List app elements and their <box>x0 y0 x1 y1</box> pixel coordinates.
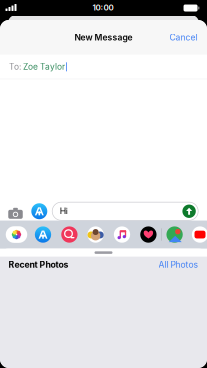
staticText: Hi <box>60 206 68 216</box>
button[interactable]: Music <box>109 220 135 249</box>
button[interactable]: Camera <box>3 202 27 220</box>
button[interactable]: Images <box>56 220 83 249</box>
button[interactable]: App Store <box>30 220 56 249</box>
staticText: To: <box>9 62 21 72</box>
staticText: 10:00 <box>92 3 113 12</box>
staticText: All Photos <box>158 259 198 270</box>
button[interactable]: YouTube <box>187 220 207 249</box>
button[interactable]: Memoji <box>82 220 109 249</box>
staticText: Zoe Taylor <box>21 62 65 72</box>
button[interactable]: Cancel <box>169 26 207 48</box>
button[interactable]: Maps <box>161 220 188 249</box>
button[interactable]: Photos <box>3 220 30 249</box>
staticText: New Message <box>74 32 132 42</box>
staticText: Cancel <box>169 32 197 42</box>
button[interactable]: Digital Touch <box>135 220 162 249</box>
button[interactable]: App Store <box>28 202 50 220</box>
staticText: Recent Photos <box>8 259 68 270</box>
button[interactable]: All Photos <box>158 256 198 273</box>
button[interactable]: Send <box>182 204 198 218</box>
